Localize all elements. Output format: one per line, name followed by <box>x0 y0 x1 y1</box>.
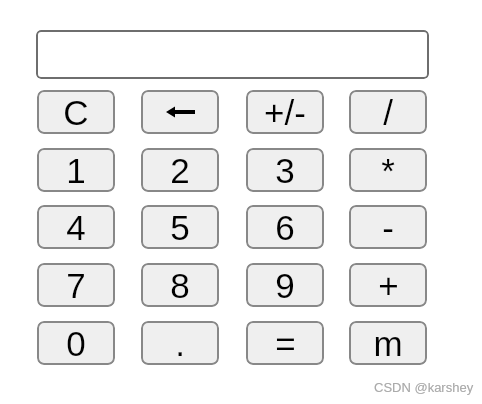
staticText: 2 <box>170 151 190 190</box>
staticText: 0 <box>66 324 86 363</box>
staticText: 9 <box>275 266 295 305</box>
staticText: = <box>275 324 296 363</box>
button[interactable]: 0 <box>37 321 115 365</box>
button[interactable]: 7 <box>37 263 115 307</box>
button[interactable]: 3 <box>246 148 324 192</box>
staticText: - <box>382 208 394 247</box>
button[interactable]: 2 <box>141 148 219 192</box>
button[interactable]: 4 <box>37 205 115 249</box>
button[interactable]: 1 <box>37 148 115 192</box>
staticText: 8 <box>170 266 190 305</box>
button[interactable]: 6 <box>246 205 324 249</box>
button[interactable]: + <box>349 263 427 307</box>
staticText: 1 <box>66 151 86 190</box>
button[interactable]: - <box>349 205 427 249</box>
button[interactable]: +/- <box>246 90 324 134</box>
button[interactable]: 8 <box>141 263 219 307</box>
staticText: 5 <box>170 208 190 247</box>
staticText: * <box>381 151 395 190</box>
button[interactable]: . <box>141 321 219 365</box>
button[interactable]: = <box>246 321 324 365</box>
button[interactable]: / <box>349 90 427 134</box>
staticText: 3 <box>275 151 295 190</box>
button[interactable]: * <box>349 148 427 192</box>
staticText: +/- <box>264 93 306 132</box>
staticText: 6 <box>275 208 295 247</box>
button[interactable] <box>141 90 219 134</box>
staticText: / <box>383 93 393 132</box>
button[interactable]: 5 <box>141 205 219 249</box>
staticText: 7 <box>66 266 86 305</box>
button[interactable]: C <box>37 90 115 134</box>
button[interactable]: m <box>349 321 427 365</box>
button[interactable] <box>36 30 429 79</box>
staticText: CSDN @karshey <box>374 380 474 395</box>
button[interactable]: 9 <box>246 263 324 307</box>
staticText: + <box>378 266 399 305</box>
staticText: 4 <box>66 208 86 247</box>
staticText: . <box>175 324 185 363</box>
staticText: C <box>63 93 89 132</box>
staticText: m <box>373 324 403 363</box>
